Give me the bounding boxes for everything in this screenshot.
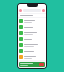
button[interactable] [18, 30, 46, 36]
button[interactable]: Action [39, 63, 44, 66]
button[interactable]: Action [19, 62, 45, 67]
button[interactable] [18, 48, 46, 54]
button[interactable] [18, 18, 46, 24]
button[interactable]: Notifications [42, 9, 45, 12]
button[interactable] [18, 54, 46, 60]
button[interactable]: Profile [19, 9, 22, 12]
button[interactable] [18, 42, 46, 48]
button[interactable] [18, 36, 46, 42]
button[interactable] [18, 24, 46, 30]
